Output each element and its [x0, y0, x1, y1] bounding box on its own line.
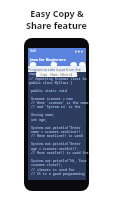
staticText: name = scanner.nextLine();	[31, 129, 83, 133]
staticText: public class MyClass {	[29, 80, 73, 84]
staticText: // It is a good programming habit to cl	[31, 171, 89, 175]
staticText: scanner.close();	[31, 162, 63, 166]
staticText: Copy	[40, 73, 48, 77]
staticText: // closers is used for closing the scan	[31, 167, 89, 171]
staticText: Program to take input from the user	[28, 67, 86, 72]
staticText: Share feature	[26, 19, 87, 31]
staticText: Java for Beginners	[30, 57, 66, 63]
staticText: age = scanner.nextInt();	[31, 146, 79, 150]
staticText: String name;	[31, 112, 55, 116]
button[interactable]: Program to take input from the user	[28, 66, 86, 72]
staticText: System.out.println("Enter your full nam	[31, 125, 89, 129]
staticText: System.out.println("Enter your age: ");	[31, 141, 89, 145]
staticText: // Here nextInt() is used for taking in	[31, 150, 89, 154]
staticText: Share	[50, 73, 59, 77]
staticText: Select all	[60, 73, 73, 77]
staticText: import java.util.Scanner;	[29, 71, 79, 75]
staticText: // and 'System.in' is the System input	[31, 104, 89, 108]
staticText: // Here 'scanner' is the name of the ob	[31, 100, 89, 104]
staticText: System.out.println("Hi, Your name is "+	[31, 158, 89, 162]
staticText: public static void main(String[] args) {	[31, 88, 89, 92]
staticText: int age;	[31, 117, 47, 121]
staticText: Easy Copy &	[30, 7, 84, 19]
staticText: // Importing Scanner class to read value	[29, 76, 87, 80]
staticText: // Here nextLine() is used for taking s	[31, 133, 89, 137]
button[interactable]: Copy	[36, 72, 77, 77]
staticText: 9:41	[30, 49, 37, 53]
staticText: Scanner scanner = new Scanner(System.in	[31, 96, 89, 100]
